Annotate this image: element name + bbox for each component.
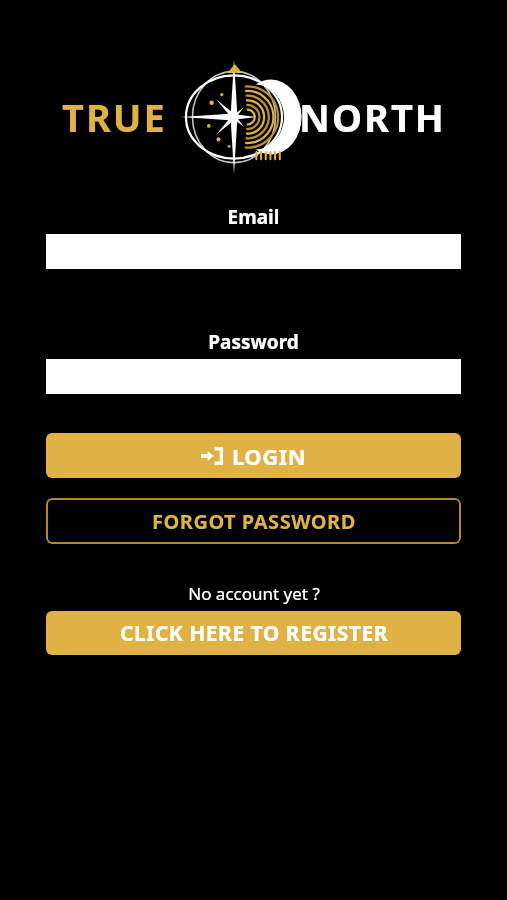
staticText: TRUE xyxy=(62,91,167,143)
other: Login xyxy=(201,445,223,467)
button[interactable]: Login xyxy=(46,433,461,478)
staticText: NORTH xyxy=(299,91,446,143)
button[interactable]: CLICK HERE TO REGISTER xyxy=(46,611,461,655)
staticText: Password xyxy=(0,329,507,355)
staticText: CLICK HERE TO REGISTER xyxy=(120,619,388,648)
staticText: No account yet ? xyxy=(188,582,320,605)
staticText: LOGIN xyxy=(232,441,307,471)
staticText: FORGOT PASSWORD xyxy=(152,508,356,535)
staticText: Email xyxy=(0,204,507,230)
button[interactable]: FORGOT PASSWORD xyxy=(46,498,461,544)
